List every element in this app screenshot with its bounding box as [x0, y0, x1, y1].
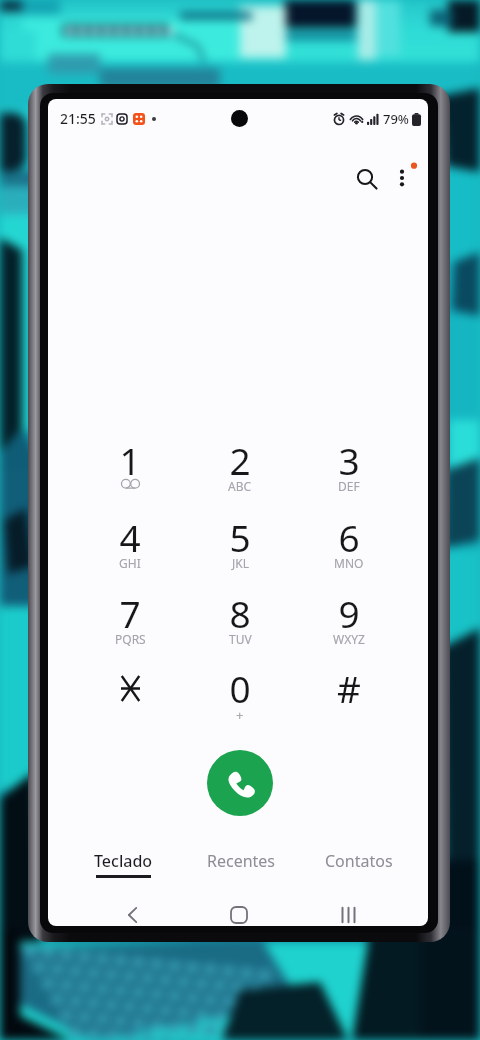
staticText: 7 — [76, 588, 184, 638]
button[interactable]: Recentes — [187, 850, 295, 894]
button[interactable]: 0 — [186, 663, 294, 737]
button[interactable]: 4 — [76, 512, 184, 586]
button[interactable]: More options — [379, 155, 424, 200]
staticText: DEF — [338, 478, 360, 494]
button[interactable]: # — [295, 663, 403, 737]
staticText: ABC — [228, 478, 252, 494]
button[interactable]: 5 — [186, 512, 294, 586]
button[interactable]: 8 — [186, 588, 294, 662]
staticText: TUV — [229, 631, 252, 647]
staticText: # — [295, 663, 403, 713]
button[interactable]: 7 — [76, 588, 184, 662]
button[interactable]: Teclado — [69, 850, 177, 894]
staticText: + — [236, 706, 244, 724]
button[interactable] — [76, 663, 184, 737]
button[interactable]: 6 — [295, 512, 403, 586]
staticText: 2 — [186, 435, 294, 485]
staticText: 5 — [186, 512, 294, 562]
button[interactable]: Contatos — [305, 850, 413, 894]
staticText: GHI — [119, 555, 141, 571]
staticText: 21:55 — [60, 109, 96, 128]
staticText: 3 — [295, 435, 403, 485]
staticText: 6 — [295, 512, 403, 562]
staticText: PQRS — [115, 631, 146, 647]
button[interactable]: Search — [344, 156, 389, 201]
button[interactable]: 9 — [295, 588, 403, 662]
staticText: Teclado — [94, 850, 153, 872]
staticText: WXYZ — [333, 631, 365, 647]
staticText: JKL — [232, 555, 249, 571]
button[interactable]: 2 — [186, 435, 294, 509]
button[interactable]: 3 — [295, 435, 403, 509]
staticText: 1 — [76, 435, 184, 485]
button[interactable]: Call — [207, 750, 273, 816]
button[interactable]: 1 — [76, 435, 184, 509]
staticText: 4 — [76, 512, 184, 562]
staticText: 8 — [186, 588, 294, 638]
staticText: Contatos — [325, 850, 393, 872]
staticText: 9 — [295, 588, 403, 638]
staticText: 79% — [383, 110, 409, 128]
staticText: Recentes — [207, 850, 276, 872]
button[interactable]: Back — [112, 895, 152, 926]
staticText: 0 — [186, 663, 294, 713]
staticText: MNO — [334, 555, 364, 571]
button[interactable]: Home — [219, 895, 259, 926]
button[interactable]: Recents — [328, 895, 368, 926]
